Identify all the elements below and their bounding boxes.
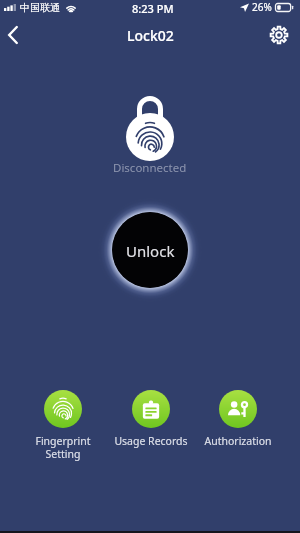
button[interactable]: Unlock <box>112 212 188 288</box>
staticText: Unlock <box>126 241 175 261</box>
button[interactable]: Settings <box>263 18 295 52</box>
staticText: Disconnected <box>113 160 187 176</box>
button[interactable]: Fingerprint Setting <box>25 390 100 461</box>
staticText: Usage Records <box>114 434 188 448</box>
staticText: Fingerprint Setting <box>35 434 91 461</box>
staticText: Authorization <box>204 434 272 448</box>
button[interactable]: Back <box>0 18 26 52</box>
staticText: 26% <box>252 0 272 14</box>
staticText: Lock02 <box>127 26 174 45</box>
staticText: 中国联通 <box>20 1 60 14</box>
button[interactable]: Authorization <box>200 390 275 448</box>
staticText: 8:23 PM <box>132 1 174 16</box>
button[interactable]: Usage Records <box>113 390 188 448</box>
